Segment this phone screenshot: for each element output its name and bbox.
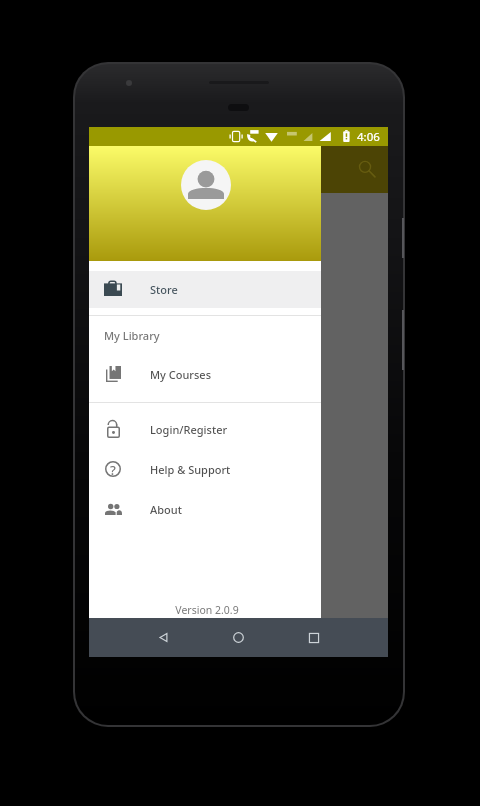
- staticText: Login/Register: [150, 422, 228, 437]
- staticText: 4:06: [357, 129, 380, 145]
- staticText: Help & Support: [150, 462, 231, 477]
- button[interactable]: Back: [126, 618, 201, 657]
- staticText: Version 2.0.9: [91, 603, 323, 617]
- button[interactable]: My Courses: [89, 354, 321, 394]
- button[interactable]: About: [89, 489, 321, 529]
- staticText: About: [150, 502, 182, 517]
- staticText: Store: [150, 282, 178, 297]
- staticText: ?: [110, 461, 116, 477]
- button[interactable]: Home: [201, 618, 276, 657]
- button[interactable]: Store: [89, 271, 321, 308]
- button[interactable]: Recents: [276, 618, 351, 657]
- button[interactable]: ?: [89, 449, 321, 489]
- button[interactable]: Search: [354, 156, 380, 182]
- staticText: My Courses: [150, 367, 212, 382]
- staticText: My Library: [104, 328, 160, 343]
- button[interactable]: Login/Register: [89, 410, 321, 449]
